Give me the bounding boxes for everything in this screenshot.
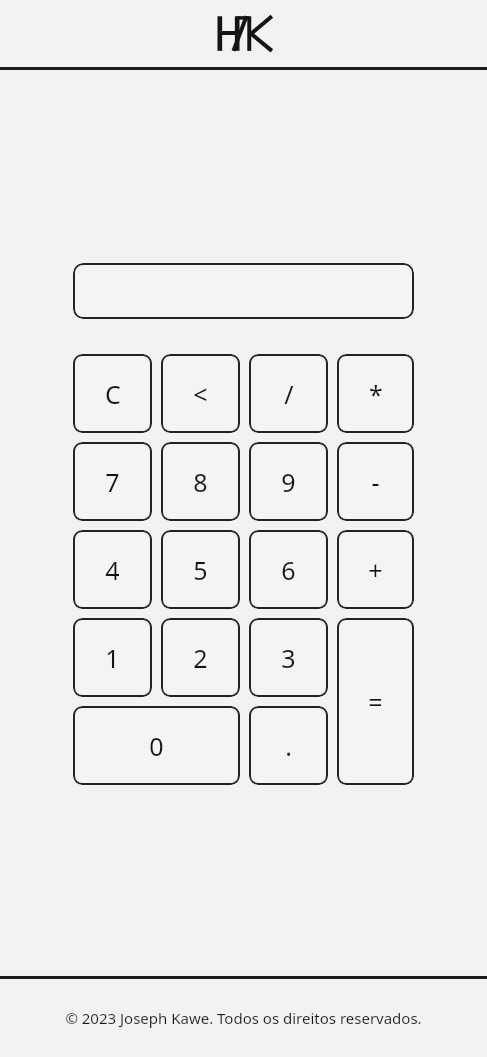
staticText: 1: [105, 641, 120, 675]
button[interactable]: .: [249, 706, 328, 785]
button[interactable]: Display: [73, 263, 414, 319]
staticText: 7: [105, 465, 120, 499]
other: HJK logo: [213, 14, 275, 52]
button[interactable]: 1: [73, 618, 152, 697]
button[interactable]: +: [337, 530, 414, 609]
button[interactable]: <: [161, 354, 240, 433]
staticText: 8: [193, 465, 208, 499]
staticText: /: [284, 377, 294, 411]
button[interactable]: 5: [161, 530, 240, 609]
button[interactable]: 6: [249, 530, 328, 609]
button[interactable]: 3: [249, 618, 328, 697]
staticText: 5: [193, 553, 208, 587]
staticText: 9: [281, 465, 296, 499]
staticText: C: [105, 377, 121, 411]
staticText: +: [368, 553, 383, 587]
staticText: 2: [193, 641, 208, 675]
button[interactable]: 9: [249, 442, 328, 521]
button[interactable]: 0: [73, 706, 240, 785]
staticText: 6: [281, 553, 296, 587]
button[interactable]: =: [337, 618, 414, 785]
staticText: =: [368, 685, 383, 719]
staticText: .: [285, 729, 292, 763]
button[interactable]: 2: [161, 618, 240, 697]
staticText: <: [193, 377, 208, 411]
button[interactable]: -: [337, 442, 414, 521]
button[interactable]: 8: [161, 442, 240, 521]
button[interactable]: /: [249, 354, 328, 433]
staticText: 3: [281, 641, 296, 675]
staticText: *: [369, 377, 383, 411]
button[interactable]: 4: [73, 530, 152, 609]
staticText: © 2023 Joseph Kawe. Todos os direitos re…: [65, 1008, 422, 1028]
staticText: -: [371, 465, 380, 499]
button[interactable]: *: [337, 354, 414, 433]
button[interactable]: 7: [73, 442, 152, 521]
button[interactable]: C: [73, 354, 152, 433]
staticText: 4: [105, 553, 120, 587]
staticText: 0: [149, 729, 164, 763]
